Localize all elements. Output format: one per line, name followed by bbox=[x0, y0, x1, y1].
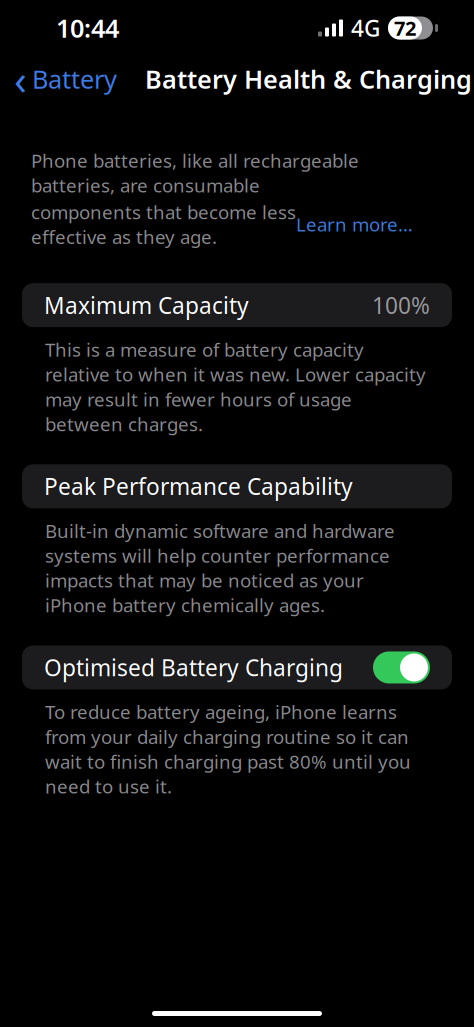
staticText: Learn more… bbox=[296, 212, 413, 237]
button[interactable]: Peak Performance Capability bbox=[22, 464, 452, 508]
staticText: 100% bbox=[372, 290, 430, 320]
staticText: Optimised Battery Charging bbox=[44, 652, 343, 682]
staticText: ‹ bbox=[14, 52, 27, 106]
staticText: Peak Performance Capability bbox=[44, 471, 353, 501]
staticText: Phone batteries, like all rechargeable b… bbox=[31, 148, 359, 198]
staticText: Battery bbox=[32, 62, 117, 96]
staticText: 10:44 bbox=[56, 11, 119, 45]
button[interactable]: Maximum Capacity bbox=[22, 283, 452, 327]
staticText: Built-in dynamic software and hardware s… bbox=[45, 518, 395, 617]
staticText: To reduce battery ageing, iPhone learns … bbox=[45, 699, 411, 799]
button[interactable]: ‹ bbox=[0, 48, 125, 110]
staticText: components that become less effective as… bbox=[31, 200, 296, 249]
button[interactable]: Learn more… bbox=[296, 212, 413, 237]
button[interactable]: Optimised Battery Charging toggle bbox=[373, 651, 430, 683]
staticText: This is a measure of battery capacity re… bbox=[45, 337, 426, 436]
staticText: 4G bbox=[351, 13, 380, 43]
staticText: Battery Health & Charging bbox=[145, 62, 472, 96]
staticText: 72 bbox=[394, 15, 416, 41]
staticText: Maximum Capacity bbox=[44, 290, 249, 320]
